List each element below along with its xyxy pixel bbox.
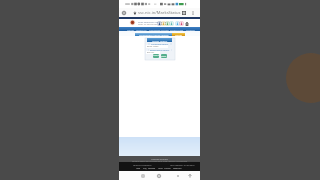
button[interactable]: Home (155, 172, 163, 180)
button[interactable]: Help (136, 167, 141, 170)
staticText: Dept. of Personnel & Training (138, 23, 169, 26)
button[interactable]: Contact (186, 28, 195, 31)
staticText: Contact (186, 28, 195, 31)
staticText: ssc.nic.in/MarksStatus (138, 10, 181, 16)
button[interactable]: More options (190, 10, 196, 16)
staticText: Roll No. (147, 51, 155, 54)
button[interactable]: Quick link (165, 21, 170, 26)
button[interactable]: Recent apps (139, 172, 147, 180)
staticText: Registration Details (150, 49, 170, 51)
staticText: Staff Selection Commission (138, 20, 169, 23)
staticText: Candidate's Marks Status (139, 33, 169, 36)
button[interactable]: Sitemap (148, 167, 156, 170)
staticText: Candidate Details (151, 43, 169, 45)
staticText: Submit (153, 54, 159, 58)
button[interactable]: ssc.nic.in/MarksStatus (133, 8, 181, 17)
staticText: Sitemap (148, 167, 156, 170)
staticText: Last Updated : 23-08-2024 (170, 164, 195, 167)
button[interactable]: Exam Name (146, 45, 168, 48)
button[interactable]: Archive (164, 167, 171, 170)
button[interactable]: Submit (153, 54, 159, 58)
staticText: Home (175, 33, 182, 36)
button[interactable]: Quick link (157, 21, 162, 26)
button[interactable]: Quick link (175, 21, 180, 26)
button[interactable]: Quick link (179, 21, 184, 26)
staticText: Reset (161, 55, 167, 58)
button[interactable]: Terms & Conditions (133, 164, 152, 167)
staticText: Archive (164, 167, 171, 170)
button[interactable]: Accessibility (184, 21, 189, 26)
button[interactable]: FAQ (143, 167, 147, 170)
staticText: What's New (170, 28, 184, 31)
button[interactable]: Share (186, 172, 194, 180)
button[interactable]: Feedback (173, 167, 182, 170)
staticText: Exam Name (147, 45, 159, 48)
button[interactable]: About Us (136, 28, 147, 31)
staticText: About Us (136, 28, 147, 31)
staticText: Website Policies (119, 158, 200, 161)
button[interactable]: Home (127, 28, 134, 31)
staticText: FAQ (143, 167, 147, 170)
button[interactable]: Reset (161, 54, 167, 58)
staticText: Links (158, 167, 163, 170)
button[interactable]: Tabs (181, 10, 187, 16)
button[interactable]: What's New (170, 28, 184, 31)
button[interactable]: Quick link (161, 21, 166, 26)
staticText: Content owned and maintained by Staff Se… (119, 160, 200, 163)
staticText: Home (127, 28, 134, 31)
staticText: Marks Status (152, 39, 168, 42)
button[interactable]: Back (174, 172, 182, 180)
staticText: Government of India (138, 26, 161, 28)
button[interactable]: Candidate Corner (149, 28, 169, 31)
staticText: Feedback (173, 167, 182, 170)
button[interactable]: Quick link (169, 21, 174, 26)
button[interactable]: Home (121, 10, 127, 16)
button[interactable]: Home (172, 33, 185, 36)
button[interactable]: Roll No. (146, 51, 160, 54)
button[interactable]: Links (158, 167, 163, 170)
staticText: Terms & Conditions (133, 164, 152, 167)
staticText: Help (136, 167, 141, 170)
staticText: Candidate Corner (149, 28, 169, 31)
